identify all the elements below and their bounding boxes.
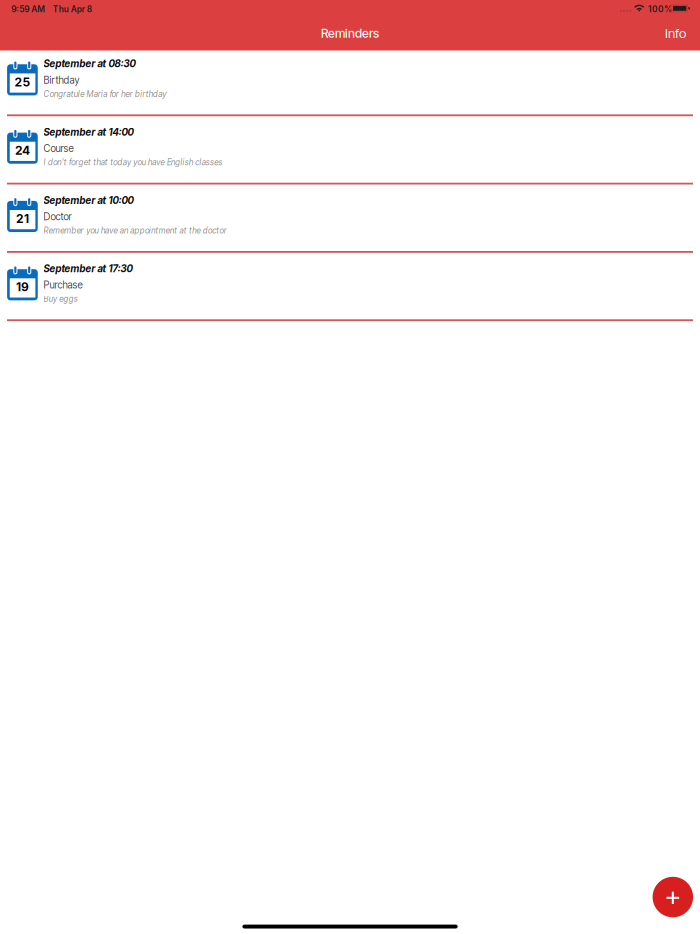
- staticText: Remember you have an appointment at the …: [44, 226, 227, 235]
- staticText: Info: [665, 25, 686, 41]
- staticText: 9:59 AM: [11, 4, 45, 14]
- button[interactable]: Add reminder: [653, 877, 693, 917]
- staticText: September at 08:30: [44, 58, 136, 70]
- button[interactable]: 24: [0, 119, 700, 187]
- staticText: Course: [44, 142, 74, 154]
- button[interactable]: 21: [0, 187, 700, 256]
- staticText: September at 10:00: [44, 194, 134, 206]
- staticText: September at 17:30: [44, 263, 133, 275]
- staticText: 21: [16, 211, 29, 226]
- button[interactable]: 25: [0, 51, 700, 119]
- staticText: Buy eggs: [44, 294, 78, 304]
- staticText: Reminders: [321, 26, 379, 41]
- staticText: September at 14:00: [44, 126, 134, 138]
- staticText: Purchase: [44, 279, 83, 291]
- staticText: 19: [16, 280, 29, 294]
- staticText: Doctor: [44, 211, 72, 223]
- staticText: 100%: [648, 4, 672, 14]
- staticText: 24: [15, 143, 30, 158]
- staticText: Thu Apr 8: [53, 4, 92, 14]
- staticText: Congratule Maria for her birthday: [44, 89, 166, 99]
- staticText: Birthday: [44, 74, 80, 86]
- button[interactable]: Info: [658, 20, 693, 46]
- staticText: I don't forget that today you have Engli…: [44, 157, 222, 167]
- staticText: 25: [15, 75, 31, 89]
- button[interactable]: 19: [0, 256, 700, 324]
